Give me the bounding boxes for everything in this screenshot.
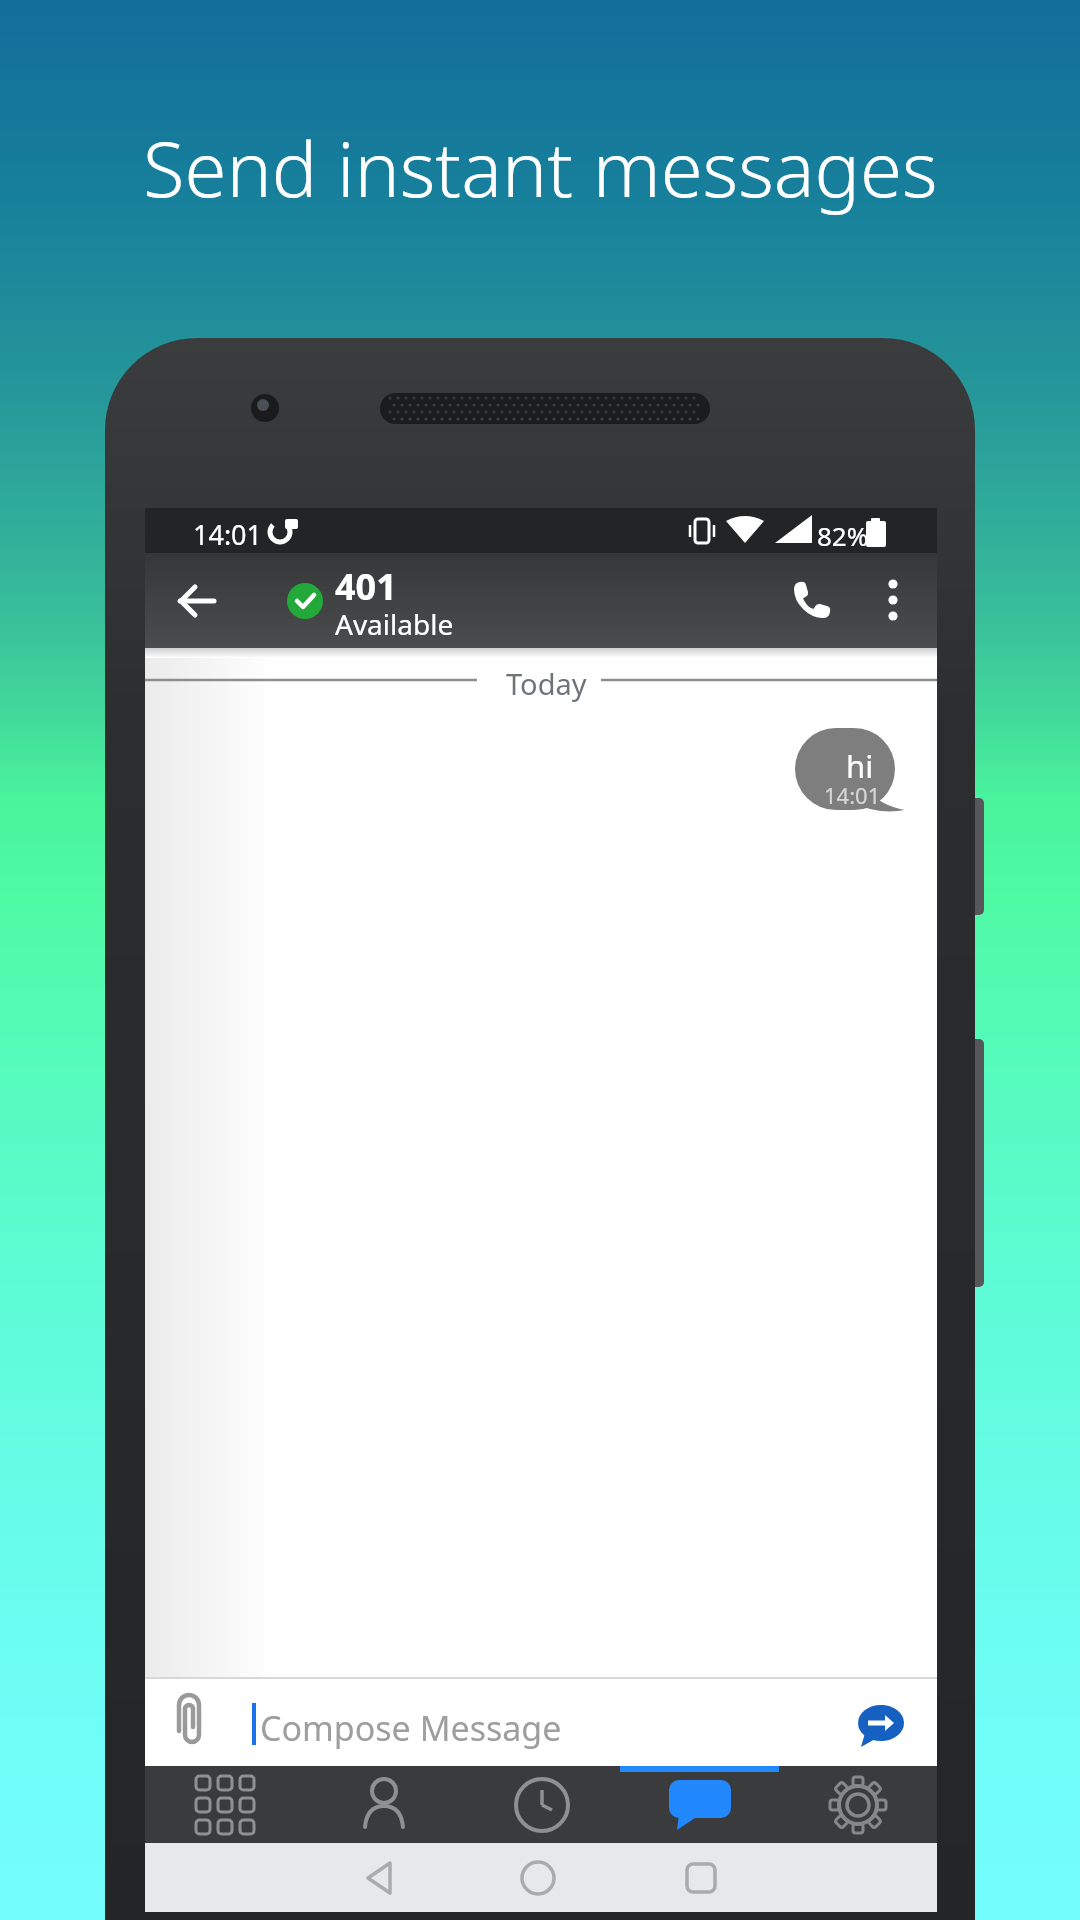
staticText: 14:01 (193, 516, 263, 553)
staticText: 401 (335, 562, 397, 611)
button[interactable] (867, 569, 919, 631)
button[interactable] (145, 1766, 304, 1843)
staticText: Today (506, 664, 587, 703)
button[interactable] (855, 1705, 907, 1749)
button[interactable] (347, 1846, 411, 1910)
button[interactable] (163, 1685, 217, 1755)
button[interactable]: Compose Message (260, 1705, 562, 1751)
staticText: hi (846, 745, 874, 787)
button[interactable] (669, 1846, 733, 1910)
staticText: 14:01 (824, 780, 881, 810)
staticText: Send instant messages (143, 116, 938, 220)
button[interactable] (781, 569, 843, 631)
staticText: Available (335, 605, 454, 643)
button[interactable] (506, 1846, 570, 1910)
button[interactable] (779, 1766, 937, 1843)
button[interactable] (463, 1766, 621, 1843)
staticText: 82% (817, 518, 869, 553)
button[interactable] (165, 569, 229, 633)
button[interactable] (304, 1766, 463, 1843)
button[interactable] (621, 1766, 779, 1843)
